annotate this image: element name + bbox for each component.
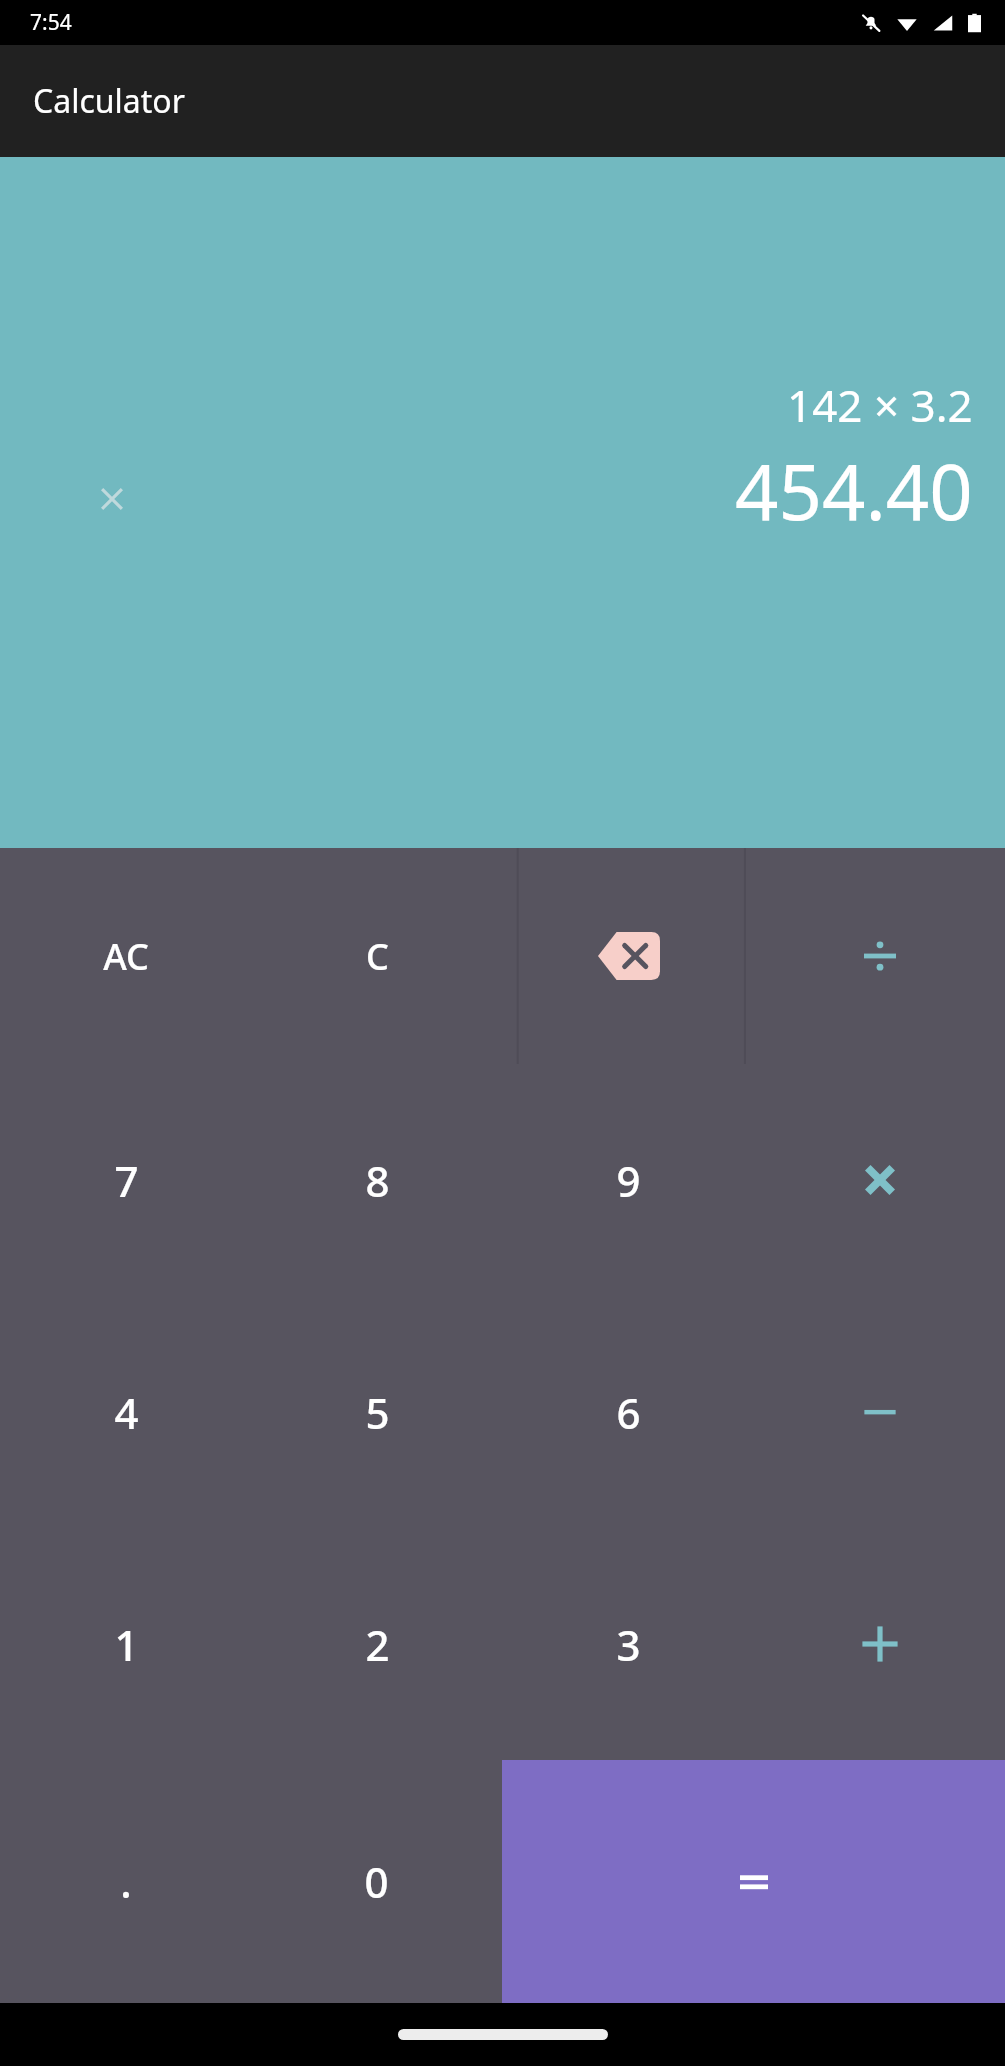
button[interactable]: 8 — [252, 1064, 503, 1296]
button[interactable]: 0 — [251, 1760, 502, 2003]
staticText: . — [120, 1853, 132, 1910]
button[interactable]: Clear history — [72, 459, 152, 539]
button[interactable]: 3 — [503, 1528, 754, 1760]
button[interactable]: 9 — [503, 1064, 754, 1296]
staticText: 4 — [114, 1384, 139, 1441]
other: Minus — [754, 1296, 1005, 1528]
button[interactable]: 1 — [0, 1528, 252, 1760]
staticText: Calculator — [33, 79, 185, 123]
button[interactable]: 4 — [0, 1296, 252, 1528]
button[interactable]: C — [252, 848, 503, 1064]
staticText: 7:54 — [30, 8, 72, 37]
button[interactable]: Multiply — [754, 1064, 1005, 1296]
staticText: C — [366, 932, 389, 981]
staticText: 9 — [616, 1152, 641, 1209]
button[interactable]: 7 — [0, 1064, 252, 1296]
button[interactable]: 2 — [252, 1528, 503, 1760]
staticText: 5 — [365, 1384, 390, 1441]
button[interactable]: Backspace — [503, 848, 754, 1064]
staticText: 2 — [365, 1616, 390, 1673]
staticText: AC — [103, 932, 149, 981]
staticText: 3 — [616, 1616, 641, 1673]
button[interactable]: Minus — [754, 1296, 1005, 1528]
button[interactable]: 5 — [252, 1296, 503, 1528]
button[interactable]: Equals — [502, 1760, 1005, 2003]
other: Backspace — [503, 848, 754, 1064]
staticText: 0 — [364, 1853, 389, 1910]
staticText: 454.40 — [735, 439, 973, 543]
button[interactable]: AC — [0, 848, 252, 1064]
staticText: 7 — [114, 1152, 139, 1209]
other: Multiply — [754, 1064, 1005, 1296]
button[interactable]: Divide — [754, 848, 1005, 1064]
staticText: 6 — [616, 1384, 641, 1441]
staticText: 1 — [114, 1616, 139, 1673]
button[interactable]: Plus — [754, 1528, 1005, 1760]
other: Divide — [754, 848, 1005, 1064]
staticText: 142 × 3.2 — [787, 375, 973, 435]
button[interactable]: . — [0, 1760, 251, 2003]
other: Plus — [754, 1528, 1005, 1760]
button[interactable]: 6 — [503, 1296, 754, 1528]
staticText: 8 — [365, 1152, 390, 1209]
